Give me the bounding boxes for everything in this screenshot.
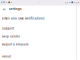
staticText: ← <box>2 7 6 11</box>
staticText: ▫ ◦ ▪ ◆ ▪ ▫ ▪ <box>65 1 79 4</box>
button[interactable]: Report a Problem <box>0 40 74 48</box>
staticText: Report a Problem <box>2 43 28 46</box>
staticText: Email and SMS Notifications <box>2 17 44 20</box>
button[interactable]: Help Center <box>0 32 74 40</box>
button[interactable]: Support <box>0 24 74 32</box>
staticText: 9:41 ▪ ◆ ▪ <box>1 1 12 4</box>
button[interactable]: Email and SMS Notifications <box>0 14 74 22</box>
staticText: ▪ <box>38 1 39 4</box>
staticText: Support <box>2 27 14 30</box>
staticText: Settings <box>9 7 21 11</box>
staticText: About <box>2 55 11 58</box>
button[interactable]: Back <box>2 6 7 12</box>
staticText: Help Center <box>2 35 20 38</box>
button[interactable]: About <box>0 52 74 60</box>
